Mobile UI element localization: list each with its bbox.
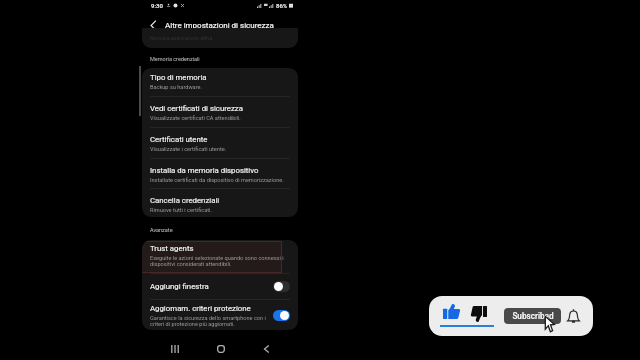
staticText: Trust agents <box>150 244 194 253</box>
button[interactable]: Recent apps <box>164 338 186 360</box>
staticText: Altre impostazioni di sicurezza <box>165 21 274 30</box>
button[interactable]: Nessuna applicazione attiva <box>142 28 298 48</box>
button[interactable]: Trust agents <box>142 240 298 273</box>
staticText: Memoria credenziali <box>150 56 200 62</box>
button[interactable]: Back <box>145 17 161 33</box>
staticText: Aggiungi finestra <box>150 282 209 291</box>
staticText: Visualizzate certificati CA attendibili. <box>150 115 241 122</box>
button[interactable]: Certificati utente <box>142 128 298 158</box>
staticText: Avanzate <box>150 227 173 233</box>
button[interactable]: Like <box>437 298 467 330</box>
button[interactable]: Aggiornam. criteri protezione <box>142 300 298 330</box>
staticText: Tipo di memoria <box>150 73 207 82</box>
button[interactable]: Toggle off <box>273 281 290 292</box>
staticText: Rimuove tutti i certificati. <box>150 207 212 214</box>
button[interactable]: Notifications <box>563 306 583 326</box>
staticText: Nessuna applicazione attiva <box>150 35 213 41</box>
staticText: Certificati utente <box>150 135 208 144</box>
button[interactable]: Back <box>255 338 277 360</box>
button[interactable]: Installa da memoria dispositivo <box>142 159 298 188</box>
button[interactable]: Dislike <box>467 298 495 330</box>
button[interactable]: Cancella credenziali <box>142 189 298 217</box>
button[interactable]: Aggiungi finestra <box>142 274 298 299</box>
staticText: 86% <box>276 2 288 9</box>
staticText: Backup su hardware. <box>150 84 202 91</box>
button[interactable]: Home <box>210 338 232 360</box>
staticText: Installa da memoria dispositivo <box>150 166 259 175</box>
staticText: Subscribed <box>512 311 554 321</box>
staticText: 9:30 <box>151 2 163 9</box>
button[interactable]: Subscribed <box>504 308 561 324</box>
staticText: Installate certificati da dispositivo di… <box>150 177 284 184</box>
staticText: Garantisce la sicurezza dello smartphone… <box>150 315 269 327</box>
staticText: Cancella credenziali <box>150 196 220 205</box>
button[interactable]: Vedi certificati di sicurezza <box>142 97 298 127</box>
button[interactable]: Toggle on <box>273 310 290 321</box>
staticText: Visualizzate i certificati utente. <box>150 146 227 153</box>
staticText: Vedi certificati di sicurezza <box>150 104 243 113</box>
button[interactable]: Tipo di memoria <box>142 68 298 96</box>
staticText: Eseguite le azioni selezionate quando so… <box>150 255 290 267</box>
staticText: Aggiornam. criteri protezione <box>150 304 251 313</box>
